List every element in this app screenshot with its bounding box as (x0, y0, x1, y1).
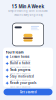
staticText: Get started (19, 90, 36, 94)
staticText: Reach your goals (10, 81, 36, 85)
button[interactable]: Stay motivated (5, 75, 49, 81)
staticText: quick daily practice (10, 85, 30, 88)
button[interactable]: Get started (3, 89, 52, 95)
staticText: 15 Min A Week (11, 3, 44, 9)
staticText: Simple training with bite-sized (8, 9, 48, 13)
button[interactable]: Track progress (5, 68, 49, 74)
staticText: quick daily practice (10, 65, 30, 68)
staticText: Stay motivated (10, 74, 34, 78)
button[interactable]: Lesson basics (5, 55, 49, 61)
button[interactable]: Build a habit (5, 62, 49, 68)
staticText: You'll learn (5, 50, 23, 54)
staticText: lessons every single day (13, 13, 42, 17)
staticText: Lesson basics (10, 55, 29, 59)
button[interactable]: Reach your goals (5, 81, 49, 87)
staticText: quick daily practice (10, 72, 30, 75)
staticText: Build a habit (10, 61, 30, 65)
staticText: quick daily practice (10, 78, 30, 82)
staticText: quick daily practice (10, 59, 30, 62)
staticText: Track progress (10, 68, 30, 72)
